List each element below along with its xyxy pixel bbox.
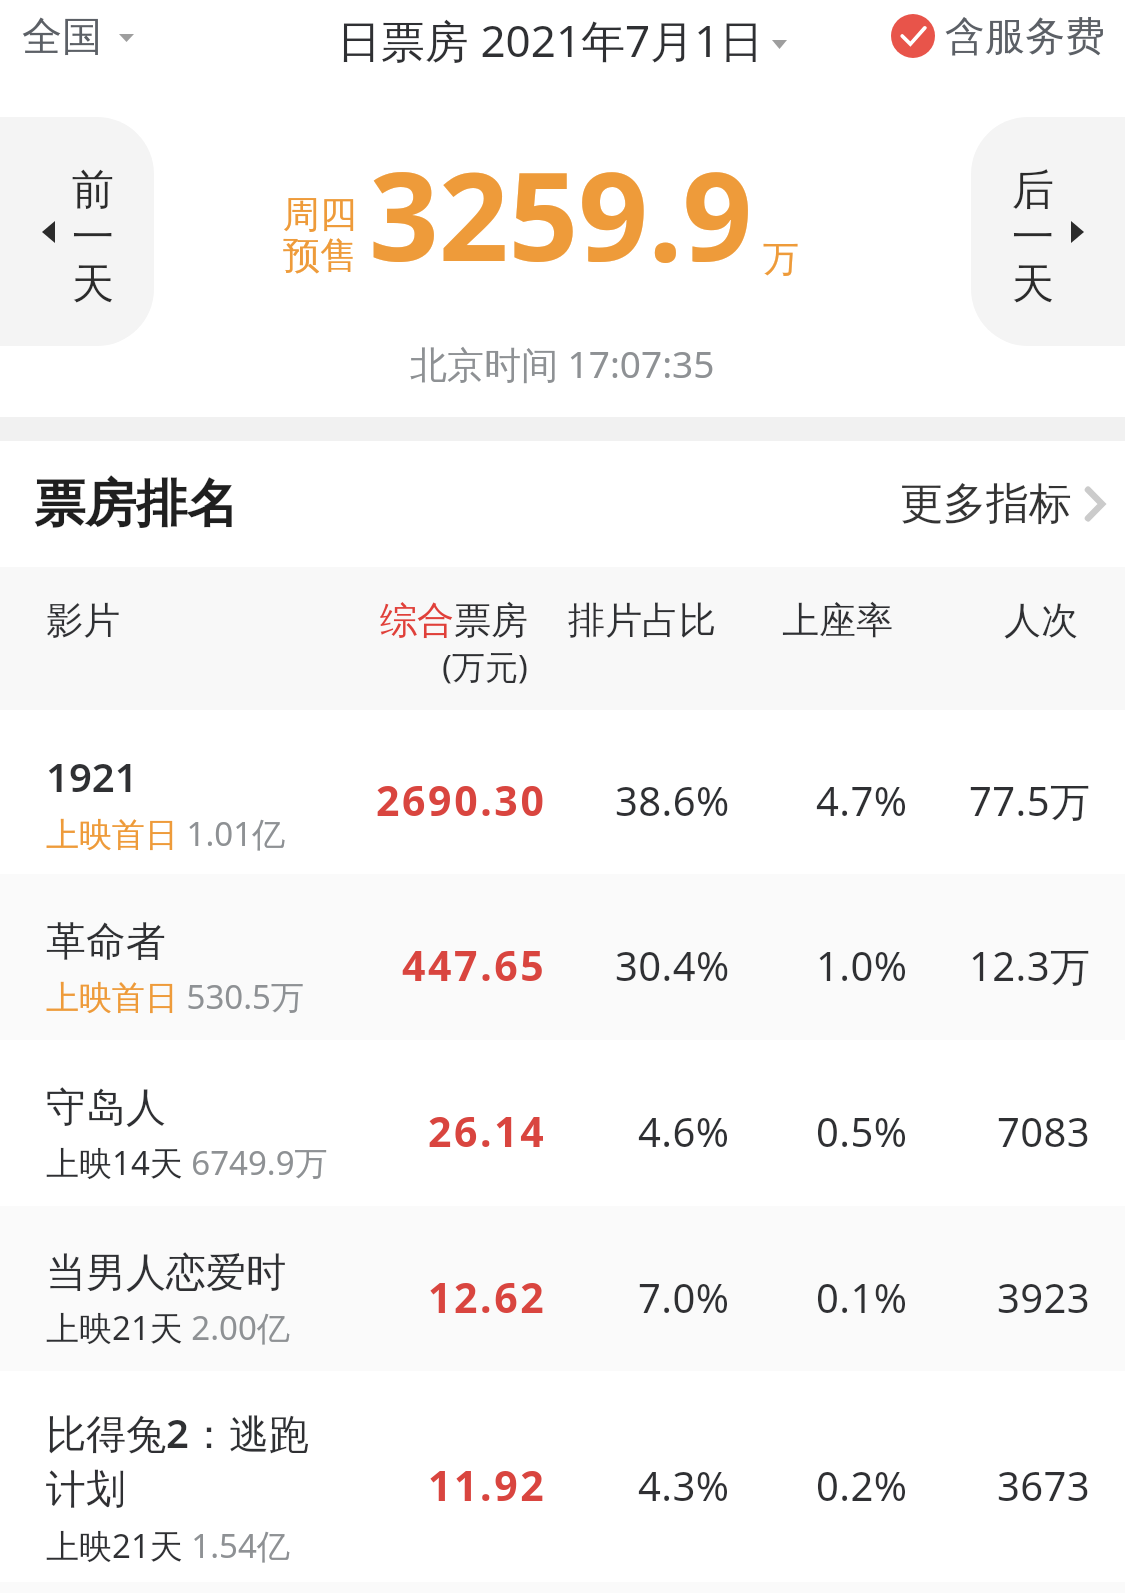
button[interactable]: 含服务费 (881, 9, 1125, 67)
staticText: 前 一 天 (72, 164, 114, 311)
staticText: 比得兔2：逃跑计划 (46, 1405, 322, 1515)
staticText: 票房排名 (34, 472, 238, 536)
staticText: 人次 (1004, 597, 1078, 644)
staticText: 447.65 (402, 937, 547, 993)
button[interactable]: 守岛人 (0, 1040, 1125, 1206)
staticText: 上映21天 1.54亿 (46, 1523, 290, 1568)
staticText: 4.6% (638, 1104, 730, 1158)
staticText: 排片占比 (568, 597, 716, 644)
button[interactable]: 当男人恋爱时 (0, 1206, 1125, 1371)
staticText: 3259.9 (369, 131, 753, 297)
staticText: 革命者 (46, 916, 322, 966)
button[interactable]: 更多指标 (880, 463, 1125, 545)
staticText: 3923 (997, 1270, 1091, 1324)
staticText: 7.0% (638, 1270, 730, 1324)
staticText: 12.3万 (969, 938, 1091, 993)
staticText: 上映首日 1.01亿 (46, 811, 286, 856)
staticText: (万元) (442, 644, 528, 689)
staticText: 2690.30 (376, 772, 547, 828)
staticText: 上座率 (782, 597, 893, 644)
staticText: 38.6% (615, 773, 730, 827)
staticText: 当男人恋爱时 (46, 1247, 322, 1297)
staticText: 综合票房 (380, 597, 528, 644)
button[interactable]: 全国 (0, 9, 150, 67)
staticText: 0.1% (816, 1270, 908, 1324)
staticText: 4.7% (816, 773, 908, 827)
staticText: 1.0% (816, 938, 908, 992)
staticText: 后 一 天 (1012, 164, 1054, 311)
staticText: 上映首日 530.5万 (46, 974, 304, 1019)
staticText: 上映21天 2.00亿 (46, 1305, 290, 1350)
staticText: 日票房 2021年7月1日 (337, 10, 764, 70)
staticText: 守岛人 (46, 1082, 322, 1132)
staticText: 影片 (46, 597, 120, 644)
staticText: 77.5万 (969, 773, 1091, 828)
staticText: 更多指标 (900, 477, 1072, 531)
staticText: 全国 (22, 11, 102, 61)
staticText: 上映14天 6749.9万 (46, 1140, 328, 1185)
button[interactable]: 日票房 2021年7月1日 (337, 8, 787, 72)
staticText: 7083 (997, 1104, 1091, 1158)
staticText: 12.62 (428, 1269, 547, 1325)
staticText: 11.92 (428, 1457, 547, 1513)
staticText: 含服务费 (945, 11, 1105, 61)
button[interactable]: 1921 (0, 710, 1125, 874)
staticText: 30.4% (615, 938, 730, 992)
staticText: 北京时间 17:07:35 (410, 338, 715, 389)
staticText: 万 (763, 236, 799, 281)
button[interactable]: 比得兔2：逃跑计划 (0, 1371, 1125, 1582)
staticText: 4.3% (638, 1458, 730, 1512)
staticText: 3673 (997, 1458, 1091, 1512)
staticText: 周四 预售 (283, 191, 357, 279)
button[interactable]: 革命者 (0, 874, 1125, 1040)
staticText: 0.2% (816, 1458, 908, 1512)
staticText: 26.14 (428, 1103, 547, 1159)
staticText: 1921 (46, 749, 322, 803)
staticText: 0.5% (816, 1104, 908, 1158)
button[interactable]: 后一天 (971, 117, 1125, 346)
button[interactable]: 前一天 (0, 117, 154, 346)
